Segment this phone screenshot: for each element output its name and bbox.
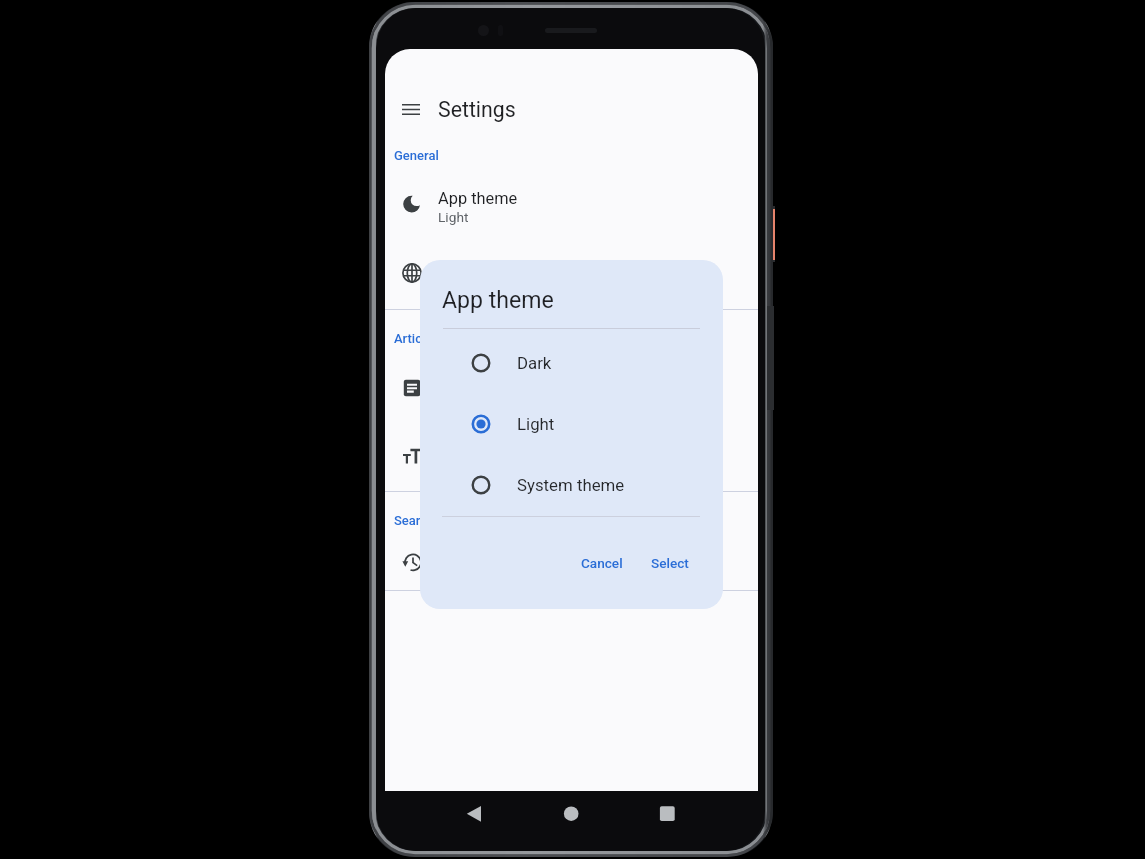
button[interactable]: Open navigation menu <box>393 91 429 127</box>
button[interactable]: Recent apps <box>648 794 686 832</box>
staticText: Settings <box>438 97 516 122</box>
staticText: Light <box>438 209 469 225</box>
button[interactable]: Dark <box>420 339 723 387</box>
button[interactable]: Article layout <box>385 361 758 415</box>
button[interactable]: Search history <box>385 535 758 589</box>
staticText: Language <box>438 258 510 277</box>
button[interactable]: App theme <box>385 177 758 231</box>
staticText: System default <box>438 278 530 294</box>
staticText: Search <box>394 513 435 528</box>
button[interactable]: Language <box>385 246 758 300</box>
staticText: Dark <box>517 353 552 373</box>
button[interactable]: Back <box>455 794 493 832</box>
staticText: Article <box>394 331 433 346</box>
staticText: System theme <box>517 475 625 495</box>
staticText: Light <box>517 414 555 434</box>
staticText: App theme <box>438 189 518 208</box>
button[interactable]: Select <box>643 546 697 580</box>
staticText: General <box>394 148 439 163</box>
button[interactable]: Font size <box>385 429 758 483</box>
button[interactable]: System theme <box>420 461 723 509</box>
staticText: Cancel <box>581 555 623 571</box>
staticText: App theme <box>442 287 554 314</box>
button[interactable]: Cancel <box>573 546 631 580</box>
button[interactable]: Light <box>420 400 723 448</box>
button[interactable]: Home <box>552 794 590 832</box>
staticText: Medium <box>438 461 488 477</box>
staticText: Select <box>651 555 689 571</box>
